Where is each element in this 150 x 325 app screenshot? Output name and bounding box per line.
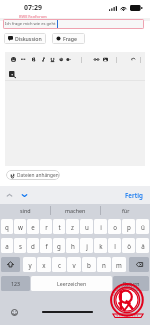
button[interactable]: Backspace xyxy=(129,257,149,272)
button[interactable]: j xyxy=(80,238,93,253)
button[interactable]: Format xyxy=(100,54,111,65)
staticText: Leerzeichen xyxy=(57,280,87,287)
button[interactable]: Dateien anhängen xyxy=(6,170,60,180)
button[interactable]: Fertig xyxy=(125,191,143,199)
button[interactable]: für xyxy=(101,204,150,217)
staticText: ü xyxy=(141,223,145,231)
button[interactable]: w xyxy=(14,219,26,234)
staticText: RWE Fanforum xyxy=(19,14,47,19)
staticText: r xyxy=(45,223,48,231)
button[interactable]: y xyxy=(23,257,36,272)
staticText: k xyxy=(99,242,103,250)
staticText: Return xyxy=(123,280,140,287)
button[interactable]: x xyxy=(37,257,51,272)
button[interactable]: ä xyxy=(136,238,149,253)
button[interactable]: h xyxy=(66,238,79,253)
button[interactable]: m xyxy=(112,257,126,272)
button[interactable]: Format xyxy=(63,54,74,65)
button[interactable]: k xyxy=(94,238,107,253)
button[interactable]: s xyxy=(14,238,26,253)
staticText: ä xyxy=(141,242,145,250)
button[interactable]: e xyxy=(27,219,39,234)
button[interactable]: Shift xyxy=(1,257,20,272)
button[interactable]: Format xyxy=(56,54,67,65)
button[interactable]: Frage xyxy=(52,33,85,44)
staticText: e xyxy=(31,223,35,231)
button[interactable]: b xyxy=(82,257,96,272)
staticText: 07:29 xyxy=(24,3,42,13)
staticText: Dateien anhängen xyxy=(17,172,59,179)
button[interactable]: p xyxy=(122,219,135,234)
staticText: für xyxy=(122,207,130,214)
button[interactable]: a xyxy=(1,238,13,253)
button[interactable]: Format xyxy=(128,54,139,65)
staticText: machen xyxy=(65,207,86,214)
button[interactable]: Previous field xyxy=(6,192,13,199)
button[interactable]: Format xyxy=(8,54,19,65)
staticText: u xyxy=(85,223,89,231)
button[interactable]: Format xyxy=(38,54,49,65)
button[interactable]: sind xyxy=(0,204,50,217)
button[interactable]: Leerzeichen xyxy=(31,276,112,291)
staticText: z xyxy=(71,223,74,231)
button[interactable]: Ich frage mich wie es geht xyxy=(3,19,144,29)
staticText: s xyxy=(19,242,22,250)
staticText: Frage xyxy=(63,35,77,42)
button[interactable]: f xyxy=(40,238,52,253)
button[interactable]: Format xyxy=(28,54,39,65)
button[interactable]: z xyxy=(66,219,79,234)
staticText: n xyxy=(102,261,106,269)
button[interactable]: d xyxy=(27,238,39,253)
button[interactable]: v xyxy=(67,257,81,272)
staticText: t xyxy=(58,223,61,231)
button[interactable]: Diskussion xyxy=(4,33,46,44)
staticText: h xyxy=(71,242,75,250)
staticText: sind xyxy=(20,207,31,214)
staticText: b xyxy=(87,261,91,269)
staticText: ö xyxy=(127,242,131,250)
button[interactable]: ü xyxy=(136,219,149,234)
button[interactable]: i xyxy=(94,219,107,234)
staticText: w xyxy=(18,223,23,231)
staticText: 123 xyxy=(11,280,20,287)
button[interactable]: g xyxy=(53,238,65,253)
button[interactable]: Format xyxy=(18,54,29,65)
staticText: m xyxy=(116,261,122,269)
staticText: Fertig xyxy=(125,191,143,199)
staticText: y xyxy=(28,261,32,269)
button[interactable]: Format xyxy=(91,54,102,65)
button[interactable]: Emoji xyxy=(11,309,18,316)
button[interactable]: l xyxy=(108,238,121,253)
staticText: f xyxy=(45,242,48,250)
staticText: Diskussion xyxy=(15,35,42,42)
staticText: Ich frage mich wie es geht xyxy=(5,21,56,27)
staticText: v xyxy=(72,261,76,269)
button[interactable]: Next field xyxy=(21,192,28,199)
staticText: a xyxy=(5,242,9,250)
staticText: i xyxy=(100,223,102,231)
staticText: p xyxy=(127,223,131,231)
staticText: d xyxy=(31,242,35,250)
button[interactable]: machen xyxy=(51,204,100,217)
button[interactable]: ö xyxy=(122,238,135,253)
button[interactable]: o xyxy=(108,219,121,234)
staticText: g xyxy=(57,242,61,250)
button[interactable]: u xyxy=(80,219,93,234)
button[interactable]: r xyxy=(40,219,52,234)
button[interactable]: t xyxy=(53,219,65,234)
staticText: x xyxy=(42,261,46,269)
button[interactable]: n xyxy=(97,257,111,272)
button[interactable]: q xyxy=(1,219,13,234)
staticText: q xyxy=(5,223,9,231)
button[interactable]: 123 xyxy=(1,276,30,291)
staticText: c xyxy=(58,261,61,269)
staticText: l xyxy=(114,242,116,250)
staticText: o xyxy=(113,223,117,231)
button[interactable]: c xyxy=(52,257,66,272)
button[interactable]: Return xyxy=(113,276,149,291)
button[interactable]: Format xyxy=(47,54,58,65)
staticText: j xyxy=(86,242,88,250)
